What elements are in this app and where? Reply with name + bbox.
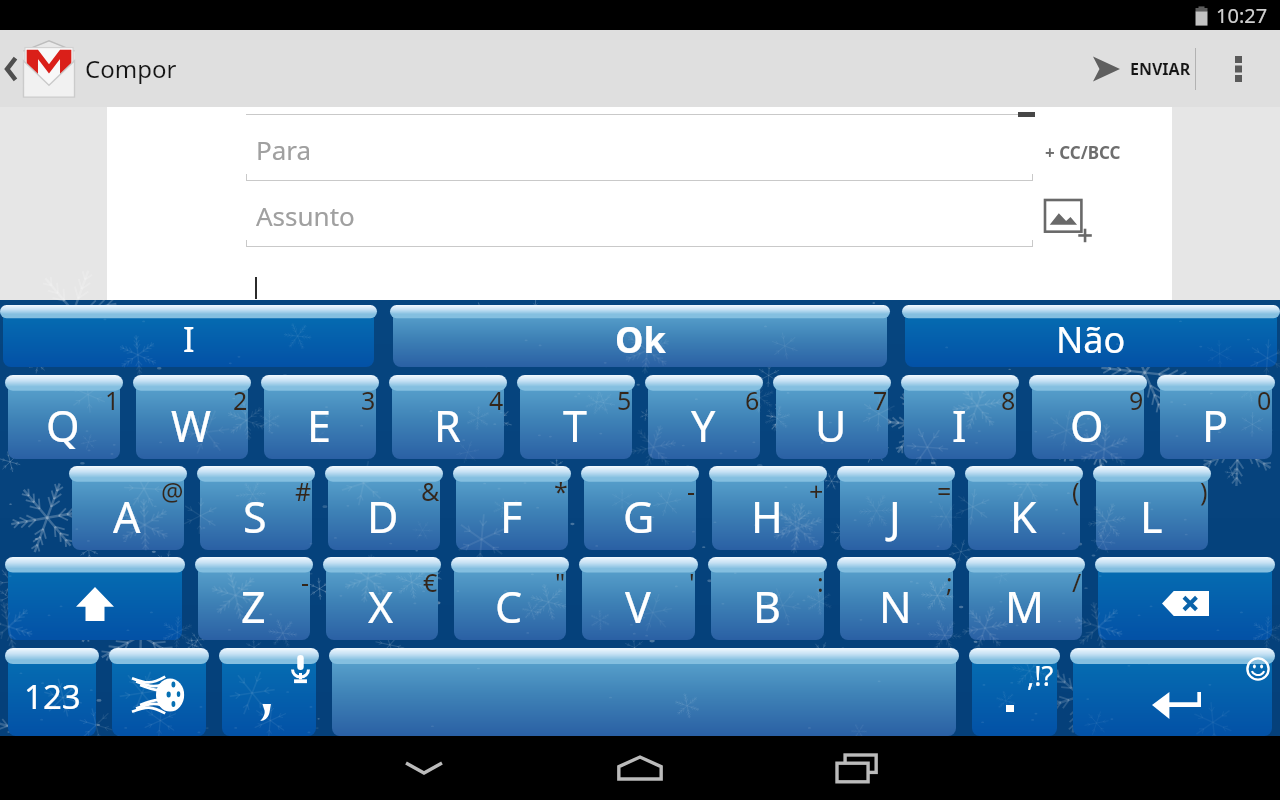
- button[interactable]: D: [325, 466, 443, 550]
- button[interactable]: ENVIAR: [1073, 30, 1195, 107]
- staticText: P: [1202, 396, 1229, 455]
- button[interactable]: Assunto: [246, 191, 1033, 247]
- staticText: 2: [233, 383, 248, 417]
- staticText: =: [937, 474, 952, 508]
- button[interactable]: O: [1029, 375, 1147, 459]
- staticText: 3: [361, 383, 376, 417]
- staticText: ): [1200, 474, 1208, 508]
- button[interactable]: ,!?: [969, 648, 1060, 736]
- staticText: Q: [46, 396, 80, 455]
- button[interactable]: F: [453, 466, 571, 550]
- staticText: N: [879, 577, 912, 636]
- staticText: ': [689, 565, 695, 599]
- staticText: 1: [105, 383, 120, 417]
- button[interactable]: Enter: [1070, 648, 1275, 736]
- button[interactable]: Backspace: [1095, 557, 1275, 640]
- staticText: Assunto: [256, 198, 355, 233]
- button[interactable]: More options: [1196, 30, 1280, 107]
- button[interactable]: K: [965, 466, 1083, 550]
- button[interactable]: Ok: [390, 305, 890, 367]
- button[interactable]: Hide keyboard: [364, 736, 484, 800]
- staticText: F: [500, 487, 523, 546]
- button[interactable]: J: [837, 466, 955, 550]
- staticText: H: [751, 487, 783, 546]
- button[interactable]: Shift: [5, 557, 185, 640]
- button[interactable]: W: [133, 375, 251, 459]
- button[interactable]: [219, 648, 319, 736]
- button[interactable]: Home: [580, 736, 700, 800]
- staticText: ENVIAR: [1130, 58, 1191, 80]
- staticText: €: [423, 565, 438, 599]
- button[interactable]: I: [901, 375, 1019, 459]
- staticText: @: [161, 474, 184, 508]
- button[interactable]: V: [579, 557, 698, 640]
- button[interactable]: Space: [329, 648, 959, 736]
- button[interactable]: 123: [5, 648, 99, 736]
- staticText: Não: [1056, 315, 1126, 364]
- staticText: 4: [489, 383, 504, 417]
- button[interactable]: P: [1157, 375, 1275, 459]
- staticText: -: [687, 474, 696, 508]
- button[interactable]: + CC/BCC: [1045, 141, 1121, 164]
- staticText: R: [434, 396, 461, 455]
- staticText: 6: [745, 383, 760, 417]
- staticText: I: [183, 316, 195, 362]
- staticText: I: [952, 396, 967, 455]
- button[interactable]: M: [966, 557, 1085, 640]
- button[interactable]: E: [261, 375, 379, 459]
- staticText: Para: [256, 132, 312, 167]
- staticText: 10:27: [1216, 2, 1268, 29]
- staticText: Ok: [615, 315, 666, 364]
- button[interactable]: G: [581, 466, 699, 550]
- staticText: &: [421, 474, 440, 508]
- button[interactable]: Swype input: [109, 648, 209, 736]
- staticText: G: [623, 487, 655, 546]
- staticText: Y: [691, 396, 716, 455]
- button[interactable]: I: [0, 305, 377, 367]
- staticText: (: [1072, 474, 1080, 508]
- button[interactable]: H: [709, 466, 827, 550]
- button[interactable]: Recent apps: [796, 736, 916, 800]
- button[interactable]: T: [517, 375, 635, 459]
- staticText: 7: [873, 383, 888, 417]
- button[interactable]: Para: [246, 125, 1033, 181]
- staticText: ;: [946, 565, 953, 599]
- staticText: #: [295, 474, 312, 508]
- staticText: ,!?: [1027, 657, 1054, 694]
- staticText: :: [817, 565, 824, 599]
- staticText: /: [1072, 565, 1082, 599]
- staticText: K: [1010, 487, 1037, 546]
- staticText: 123: [24, 674, 81, 719]
- staticText: 5: [617, 383, 632, 417]
- button[interactable]: L: [1093, 466, 1211, 550]
- staticText: +: [809, 474, 824, 508]
- button[interactable]: Q: [5, 375, 123, 459]
- button[interactable]: S: [197, 466, 315, 550]
- staticText: 8: [1001, 383, 1016, 417]
- staticText: 0: [1257, 383, 1272, 417]
- staticText: A: [113, 487, 141, 546]
- button[interactable]: Attach image: [1045, 200, 1097, 248]
- staticText: E: [307, 396, 331, 455]
- button[interactable]: Navigate up: [0, 30, 78, 107]
- staticText: C: [495, 577, 523, 636]
- button[interactable]: R: [389, 375, 507, 459]
- button[interactable]: C: [451, 557, 569, 640]
- staticText: 9: [1129, 383, 1144, 417]
- staticText: O: [1070, 396, 1104, 455]
- button[interactable]: N: [837, 557, 956, 640]
- staticText: S: [243, 487, 267, 546]
- other: Navigate up: [4, 54, 18, 84]
- button[interactable]: Não: [902, 305, 1280, 367]
- staticText: J: [889, 487, 901, 546]
- staticText: Z: [241, 577, 266, 636]
- button[interactable]: A: [69, 466, 187, 550]
- button[interactable]: Z: [195, 557, 313, 640]
- staticText: W: [171, 396, 211, 455]
- button[interactable]: U: [773, 375, 891, 459]
- staticText: B: [753, 577, 781, 636]
- button[interactable]: Y: [645, 375, 763, 459]
- button[interactable]: X: [323, 557, 441, 640]
- staticText: D: [367, 487, 399, 546]
- button[interactable]: B: [708, 557, 827, 640]
